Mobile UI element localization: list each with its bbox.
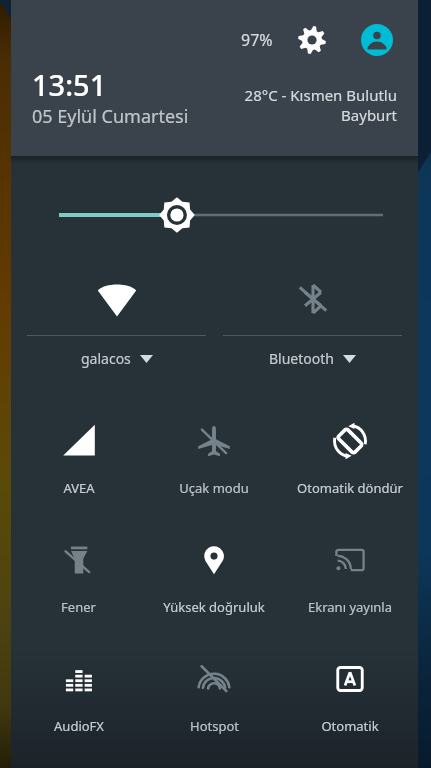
staticText: Ekranı yayınla (308, 598, 392, 616)
button[interactable]: AudioFX (11, 635, 146, 754)
staticText: Hotspot (190, 717, 239, 735)
button[interactable]: Bluetooth (223, 262, 402, 372)
button[interactable]: Uçak modu (146, 397, 282, 516)
button[interactable]: User profile (359, 22, 395, 58)
button[interactable]: AVEA (11, 397, 146, 516)
staticText: 05 Eylül Cumartesi (32, 104, 189, 129)
staticText: galacos (81, 349, 131, 368)
button[interactable]: 28°C - Kısmen Bulutlu (11, 85, 397, 125)
staticText: Otomatik döndür (297, 479, 403, 497)
button[interactable]: Fener (11, 516, 146, 635)
staticText: AudioFX (54, 717, 104, 735)
button[interactable]: Brightness (11, 192, 418, 238)
button[interactable]: Hotspot (146, 635, 282, 754)
button[interactable]: Otomatik döndür (282, 397, 418, 516)
staticText: 97% (241, 29, 273, 51)
button[interactable]: galacos (27, 262, 206, 372)
button[interactable]: Ekranı yayınla (282, 516, 418, 635)
staticText: Bluetooth (269, 349, 334, 368)
staticText: AVEA (63, 479, 95, 497)
staticText: Bayburt (341, 105, 397, 125)
staticText: Uçak modu (179, 479, 249, 497)
button[interactable]: 13:51 (32, 65, 189, 129)
staticText: 28°C - Kısmen Bulutlu (244, 85, 397, 105)
button[interactable]: Otomatik (282, 635, 418, 754)
staticText: 13:51 (32, 65, 107, 104)
staticText: Fener (61, 598, 96, 616)
button[interactable]: Yüksek doğruluk (146, 516, 282, 635)
staticText: Yüksek doğruluk (163, 598, 265, 616)
staticText: Otomatik (321, 717, 379, 735)
button[interactable]: Settings (294, 22, 330, 58)
